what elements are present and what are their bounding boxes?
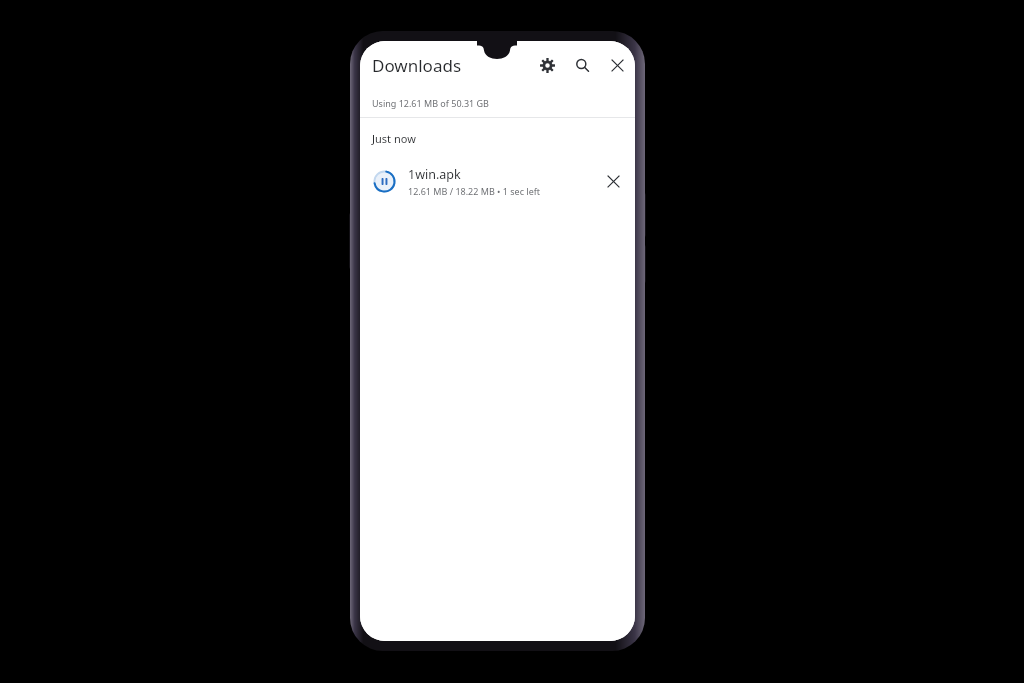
staticText: Downloads — [372, 54, 462, 77]
staticText: 12.61 MB / 18.22 MB • 1 sec left — [408, 185, 541, 197]
staticText: Just now — [372, 131, 416, 146]
button[interactable]: Search — [569, 52, 595, 78]
button[interactable]: Close — [604, 52, 630, 78]
button[interactable]: Pause download — [360, 158, 635, 204]
button[interactable]: Cancel download — [598, 166, 628, 196]
staticText: Using 12.61 MB of 50.31 GB — [372, 97, 489, 109]
staticText: 1win.apk — [408, 166, 461, 183]
button[interactable]: Settings — [534, 52, 560, 78]
button[interactable]: Pause download — [371, 168, 397, 194]
